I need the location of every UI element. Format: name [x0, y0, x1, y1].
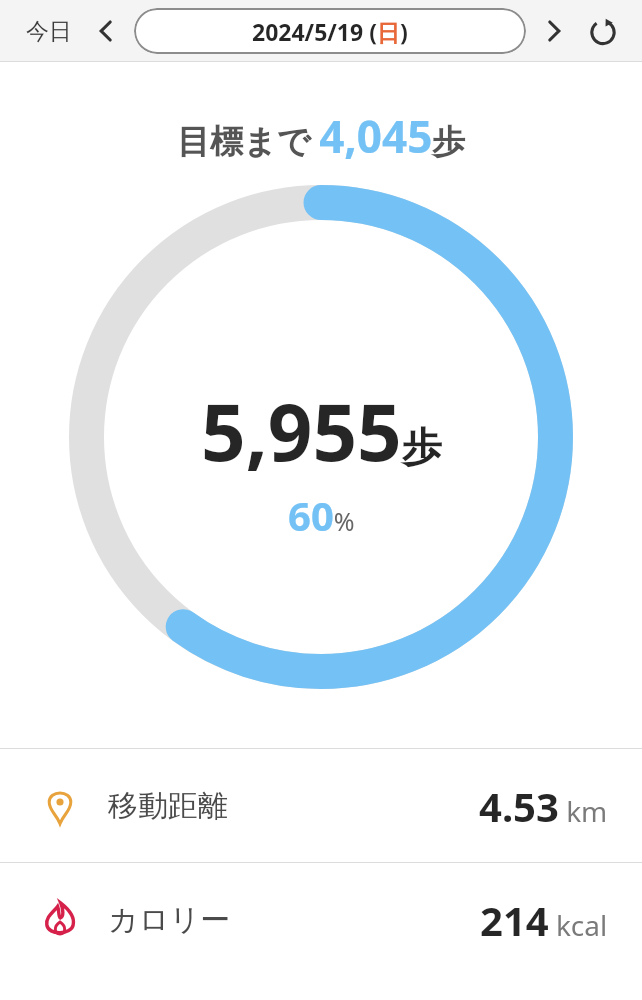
staticText: 目標まで 4,045歩 — [177, 106, 466, 166]
staticText: 214 kcal — [480, 893, 608, 947]
button[interactable]: 移動距離 — [0, 749, 642, 862]
staticText: カロリー — [108, 901, 231, 939]
button[interactable]: 今日 — [0, 9, 84, 54]
staticText: 移動距離 — [108, 787, 228, 825]
button[interactable]: 2024/5/19 (日) — [134, 8, 526, 54]
staticText: 5,955歩 — [201, 378, 442, 484]
button[interactable]: Next day — [532, 9, 576, 53]
staticText: 2024/5/19 (日) — [252, 16, 408, 47]
button[interactable]: カロリー — [0, 863, 642, 976]
button[interactable]: Refresh — [576, 4, 630, 58]
button[interactable]: Previous day — [84, 9, 128, 53]
staticText: 4.53 km — [479, 779, 608, 833]
staticText: 60% — [288, 488, 355, 542]
staticText: 今日 — [26, 17, 72, 46]
